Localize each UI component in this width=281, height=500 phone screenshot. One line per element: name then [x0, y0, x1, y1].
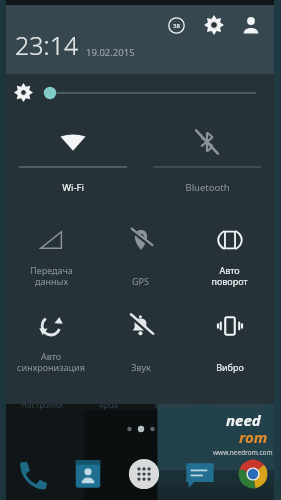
- staticText: Авто поворот: [211, 264, 248, 287]
- button[interactable]: Battery 38 percent: [163, 12, 189, 38]
- staticText: Bluetooth: [185, 181, 230, 194]
- button[interactable]: Wi-Fi: [6, 114, 140, 210]
- button[interactable]: Вибро: [185, 296, 274, 382]
- staticText: Звук: [131, 361, 151, 373]
- button[interactable]: Settings: [201, 12, 227, 38]
- staticText: www.needrom.com: [213, 448, 273, 457]
- staticText: Настройки: [21, 399, 63, 410]
- staticText: 38: [173, 22, 180, 30]
- staticText: 19.02.2015: [86, 46, 135, 59]
- staticText: Авто синхронизация: [17, 350, 85, 373]
- button[interactable]: Brightness: [6, 74, 274, 111]
- button[interactable]: Messaging: [172, 448, 228, 500]
- button[interactable]: Передача данных: [6, 210, 96, 296]
- button[interactable]: Contacts: [60, 448, 116, 500]
- staticText: 23:14: [15, 28, 79, 62]
- staticText: need: [226, 410, 261, 430]
- staticText: rom: [239, 427, 268, 447]
- button[interactable]: Авто синхронизация: [6, 296, 96, 382]
- staticText: 4pda: [99, 399, 118, 410]
- button[interactable]: Авто поворот: [185, 210, 274, 296]
- button[interactable]: User profile: [238, 12, 264, 38]
- button[interactable]: Phone: [4, 448, 60, 500]
- staticText: Вибро: [216, 361, 244, 373]
- button[interactable]: Apps: [116, 448, 172, 500]
- button[interactable]: Chrome: [228, 448, 277, 500]
- button[interactable]: GPS: [96, 210, 185, 296]
- button[interactable]: Звук: [96, 296, 185, 382]
- staticText: GPS: [132, 275, 149, 287]
- button[interactable]: Bluetooth: [140, 114, 274, 210]
- staticText: Передача данных: [30, 264, 73, 287]
- staticText: ВКонтакте: [154, 399, 195, 410]
- staticText: Root Explorer: [214, 399, 266, 410]
- staticText: Wi-Fi: [62, 181, 84, 194]
